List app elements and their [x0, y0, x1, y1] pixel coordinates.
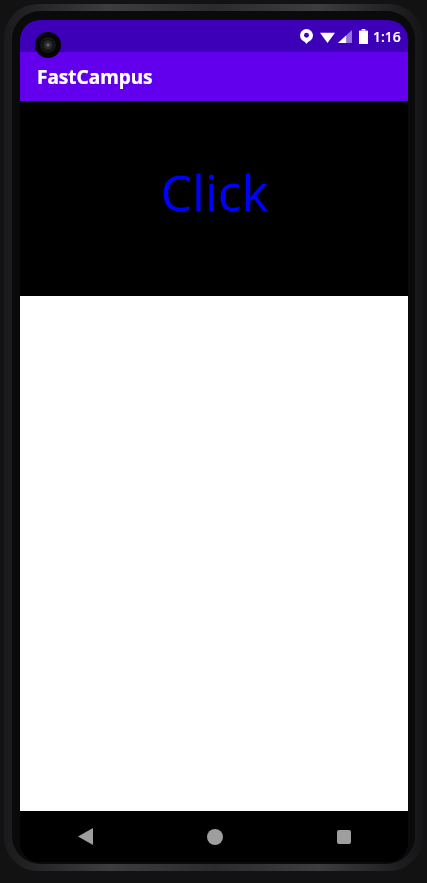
button[interactable]: Recent apps: [279, 811, 408, 862]
staticText: FastCampus: [37, 64, 153, 90]
button[interactable]: Click: [160, 158, 269, 226]
staticText: 1:16: [373, 27, 401, 46]
button[interactable]: Back: [20, 811, 150, 862]
button[interactable]: Home: [150, 811, 279, 862]
